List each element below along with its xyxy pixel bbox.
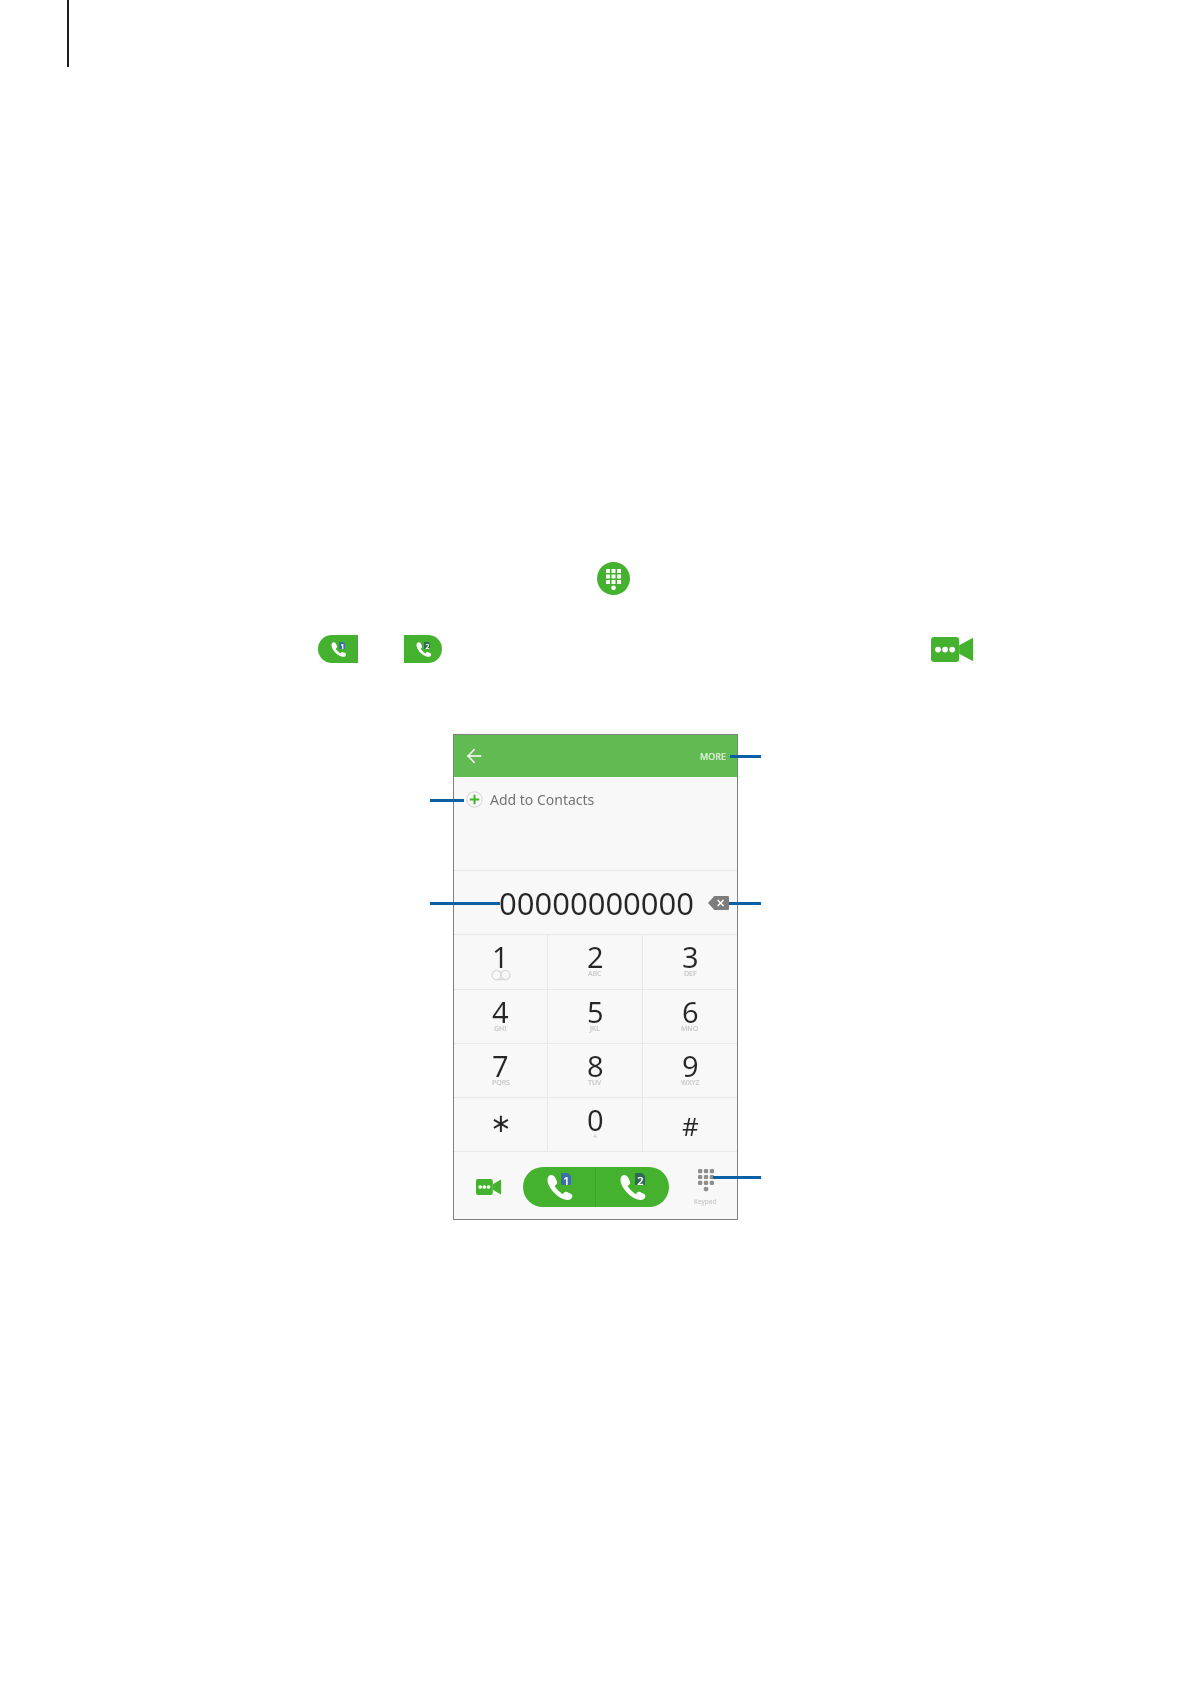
- staticText: 9: [682, 1046, 699, 1085]
- staticText: GHI: [494, 1024, 507, 1034]
- staticText: DEF: [684, 969, 697, 979]
- button[interactable]: Video call: [931, 637, 973, 662]
- staticText: 4: [492, 992, 509, 1031]
- staticText: TUV: [588, 1078, 602, 1088]
- button[interactable]: Call with SIM 1: [523, 1167, 595, 1207]
- button[interactable]: 3: [643, 935, 737, 989]
- staticText: 2: [637, 1173, 644, 1185]
- staticText: PQRS: [492, 1078, 510, 1088]
- button[interactable]: #: [643, 1098, 737, 1151]
- staticText: Add to Contacts: [490, 790, 595, 809]
- button[interactable]: MORE: [700, 750, 727, 762]
- button[interactable]: Call with SIM 1: [318, 635, 358, 663]
- button[interactable]: Keypad: [694, 1169, 717, 1206]
- staticText: JKL: [590, 1024, 600, 1034]
- staticText: 6: [682, 992, 699, 1031]
- staticText: WXYZ: [681, 1078, 700, 1088]
- button[interactable]: 7: [454, 1044, 547, 1097]
- button[interactable]: 1: [454, 935, 547, 989]
- staticText: MNO: [681, 1024, 699, 1034]
- button[interactable]: 2: [548, 935, 642, 989]
- staticText: 2: [587, 937, 604, 976]
- staticText: 8: [587, 1046, 604, 1085]
- button[interactable]: 8: [548, 1044, 642, 1097]
- button[interactable]: Back: [460, 742, 488, 770]
- button[interactable]: Delete: [708, 896, 729, 910]
- button[interactable]: 5: [548, 990, 642, 1043]
- staticText: 7: [492, 1046, 509, 1085]
- button[interactable]: Add to Contacts: [454, 777, 737, 821]
- staticText: 1: [492, 937, 509, 976]
- button[interactable]: 6: [643, 990, 737, 1043]
- button[interactable]: 0: [548, 1098, 642, 1151]
- staticText: ∗: [490, 1108, 512, 1138]
- staticText: 2: [425, 642, 430, 649]
- button[interactable]: Video call: [476, 1179, 501, 1195]
- button[interactable]: ∗: [454, 1098, 547, 1151]
- button[interactable]: Keypad: [597, 562, 630, 595]
- staticText: MORE: [700, 750, 727, 762]
- staticText: 0: [587, 1100, 604, 1139]
- staticText: 3: [682, 937, 699, 976]
- button[interactable]: 4: [454, 990, 547, 1043]
- staticText: 1: [563, 1173, 570, 1185]
- staticText: 1: [340, 642, 345, 649]
- staticText: Keypad: [694, 1197, 717, 1206]
- button[interactable]: Call with SIM 2: [404, 635, 442, 663]
- staticText: 5: [587, 992, 604, 1031]
- staticText: +: [593, 1132, 598, 1142]
- staticText: #: [682, 1108, 699, 1143]
- button[interactable]: 9: [643, 1044, 737, 1097]
- staticText: ABC: [588, 969, 602, 979]
- staticText: 00000000000: [499, 882, 695, 924]
- button[interactable]: Call with SIM 2: [596, 1167, 669, 1207]
